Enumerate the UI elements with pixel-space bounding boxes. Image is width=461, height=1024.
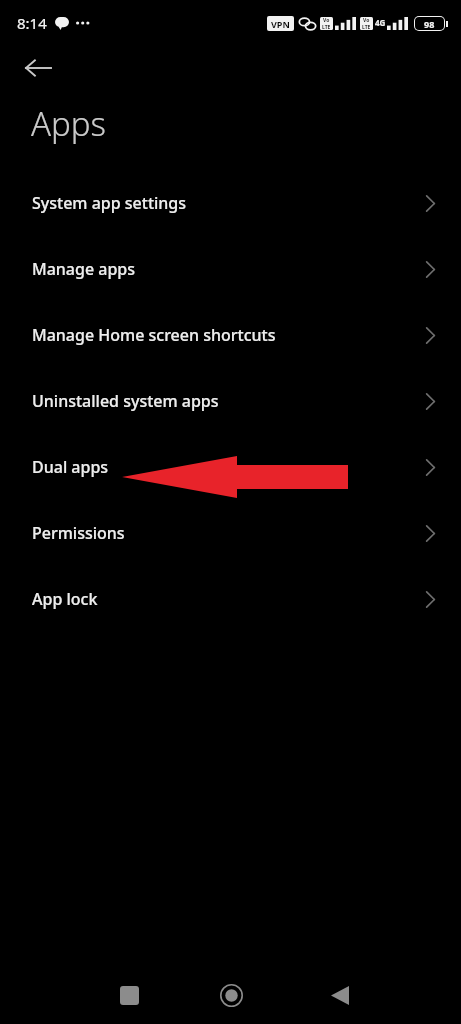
staticText: Dual apps (32, 456, 109, 478)
button[interactable]: Manage Home screen shortcuts (0, 302, 461, 368)
staticText: Apps (31, 101, 107, 146)
button[interactable]: Recent apps (109, 975, 149, 1015)
staticText: 4G (375, 17, 386, 28)
staticText: System app settings (32, 192, 187, 214)
staticText: Uninstalled system apps (32, 390, 219, 412)
button[interactable]: Dual apps (0, 434, 461, 500)
staticText: LTE (322, 24, 331, 30)
staticText: VPN (271, 18, 290, 30)
staticText: Vo (363, 17, 370, 24)
staticText: 8:14 (17, 13, 47, 33)
staticText: 98 (424, 18, 435, 30)
staticText: LTE (362, 24, 371, 30)
button[interactable]: Back (320, 975, 360, 1015)
button[interactable]: Permissions (0, 500, 461, 566)
button[interactable]: System app settings (0, 170, 461, 236)
staticText: Vo (323, 17, 330, 24)
button[interactable]: Back (20, 50, 56, 86)
staticText: Manage apps (32, 258, 136, 280)
staticText: Permissions (32, 522, 125, 544)
button[interactable]: Manage apps (0, 236, 461, 302)
staticText: App lock (32, 588, 98, 610)
button[interactable]: App lock (0, 566, 461, 632)
button[interactable]: Home (211, 975, 251, 1015)
button[interactable]: Uninstalled system apps (0, 368, 461, 434)
staticText: Manage Home screen shortcuts (32, 324, 276, 346)
